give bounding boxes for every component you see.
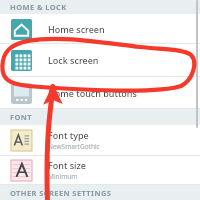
staticText: OTHER SCREEN SETTINGS — [10, 188, 112, 198]
staticText: FONT — [10, 112, 33, 122]
staticText: Home screen — [48, 23, 105, 35]
button[interactable]: Font size — [0, 156, 200, 184]
staticText: HOME & LOCK — [10, 2, 67, 12]
button[interactable]: Home screen — [0, 14, 200, 43]
button[interactable]: Lock screen — [0, 44, 200, 76]
staticText: Font type — [48, 129, 89, 141]
button[interactable]: Home touch buttons — [0, 77, 200, 108]
staticText: Lock screen — [48, 54, 99, 66]
staticText: Font size — [48, 159, 86, 171]
button[interactable]: Font type — [0, 125, 200, 155]
staticText: NewSmartGothic — [48, 142, 100, 151]
staticText: Home touch buttons — [48, 87, 137, 99]
staticText: Minimum — [48, 172, 78, 181]
